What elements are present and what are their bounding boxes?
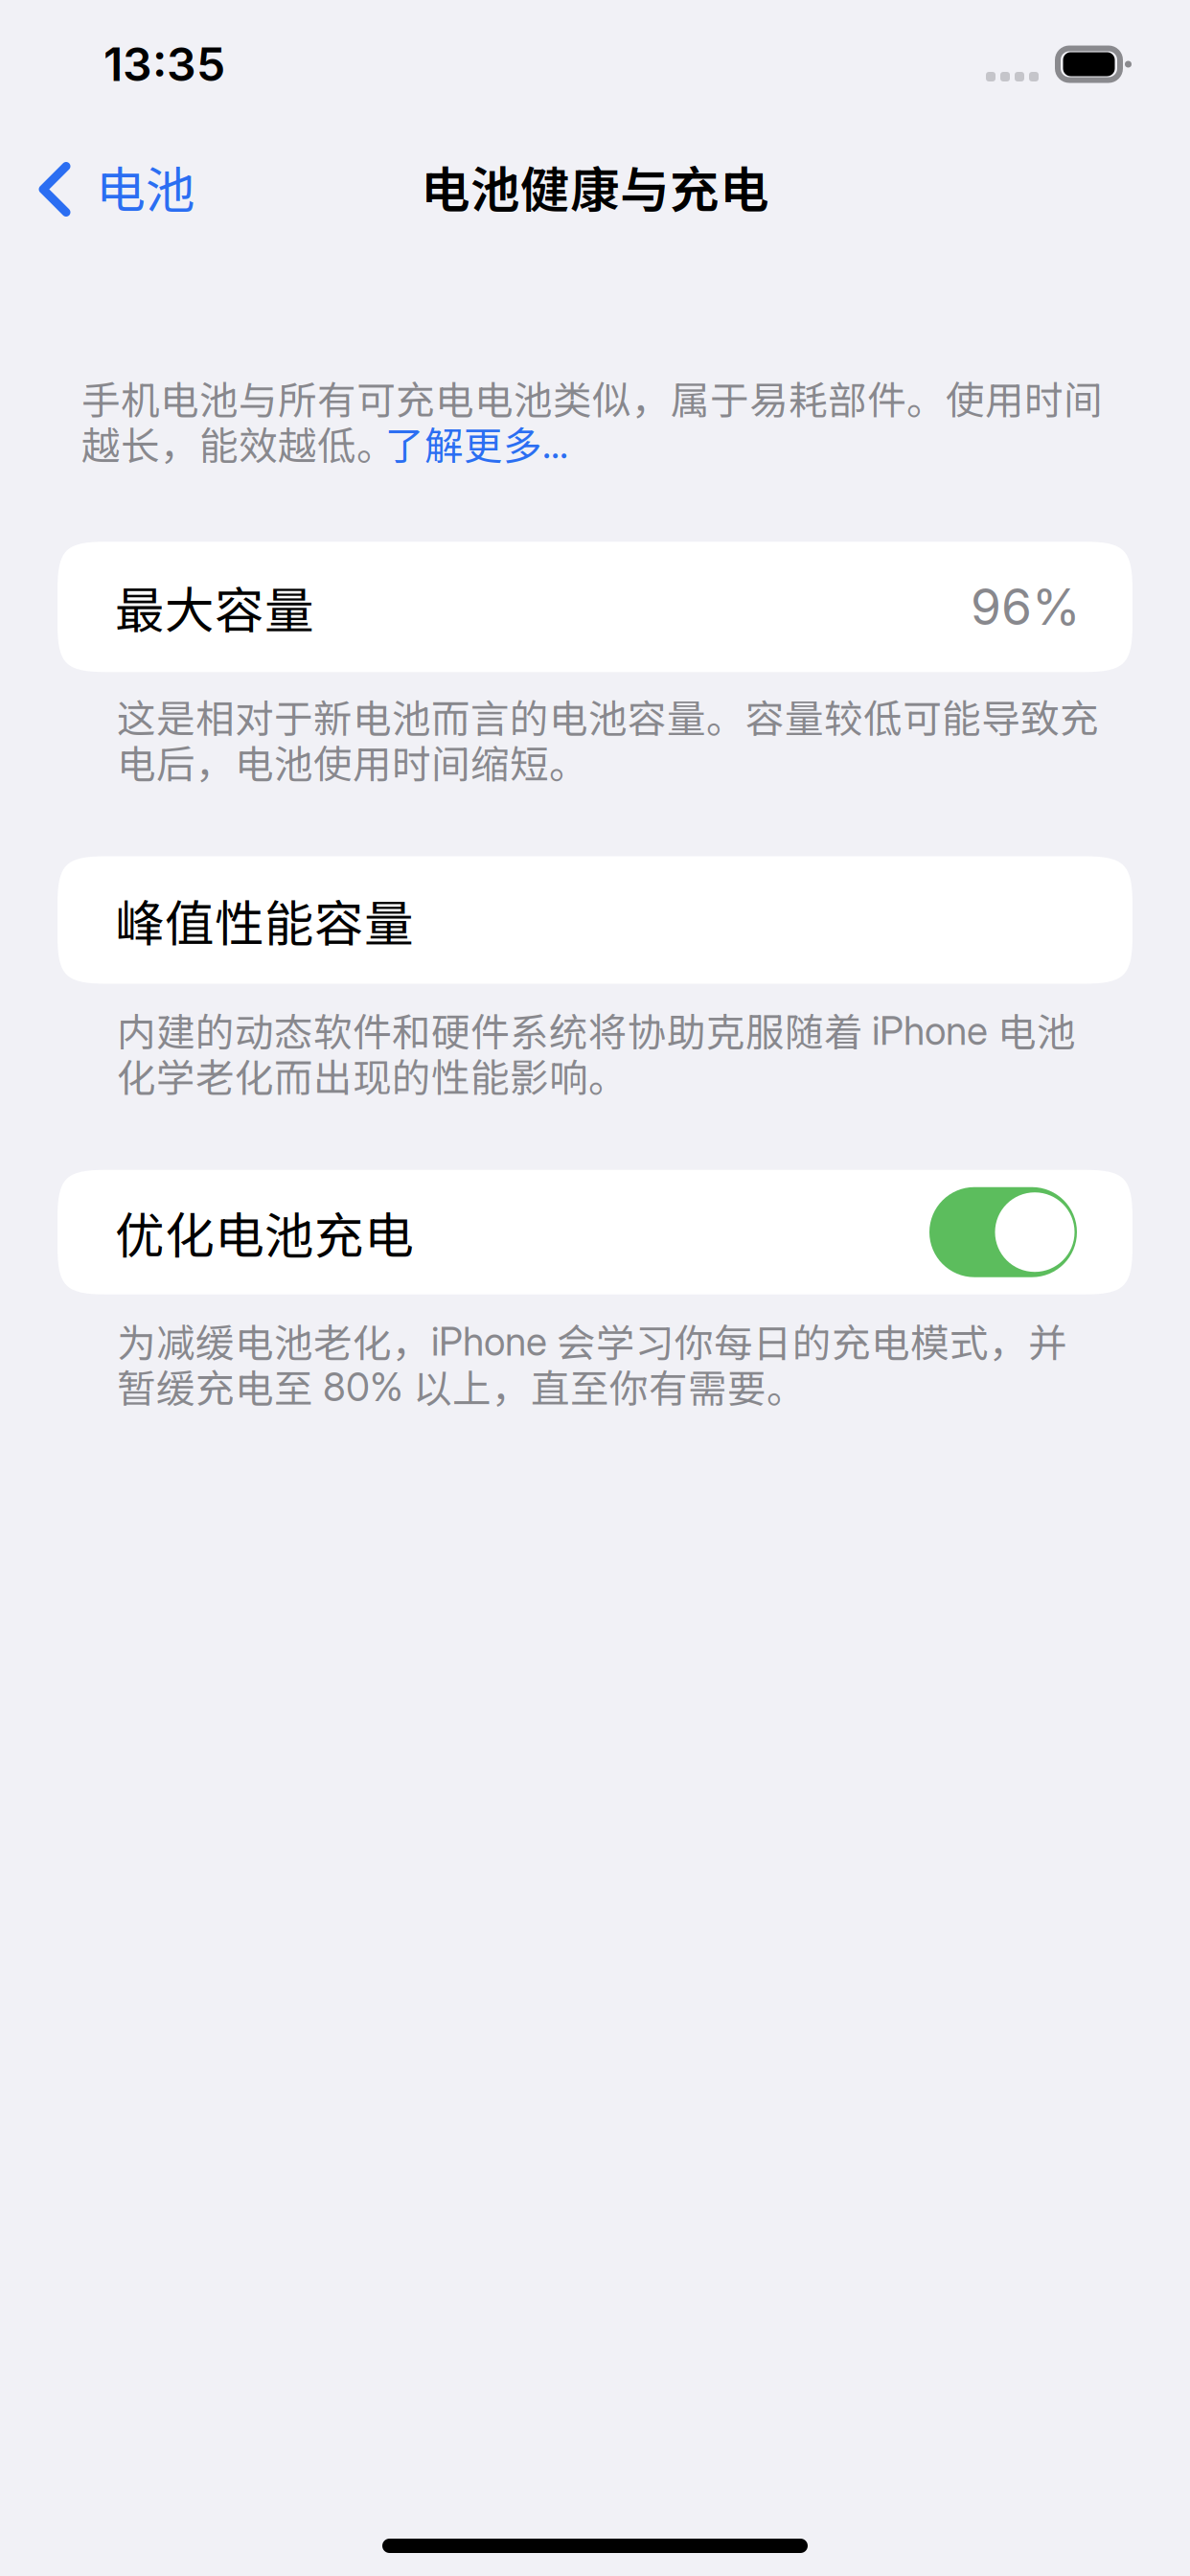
staticText: 峰值性能容量 <box>115 891 414 949</box>
staticText: 越长，能效越低。 <box>81 420 396 466</box>
staticText: 电池健康与充电 <box>421 157 769 215</box>
staticText: 手机电池与所有可充电电池类似，属于易耗部件。使用时间 <box>81 375 1103 420</box>
button[interactable]: 了解更多... <box>385 420 568 466</box>
staticText: 内建的动态软件和硬件系统将协助克服随着 iPhone 电池化学老化而出现的性能影… <box>117 1007 1076 1098</box>
staticText: 电池 <box>96 157 195 215</box>
staticText: 13:35 <box>103 42 225 87</box>
staticText: 96% <box>971 583 1081 631</box>
staticText: 最大容量 <box>115 578 314 636</box>
button[interactable]: 电池 <box>0 138 195 235</box>
staticText: 优化电池充电 <box>115 1203 414 1261</box>
staticText: 了解更多... <box>385 420 568 466</box>
staticText: 为减缓电池老化，iPhone 会学习你每日的充电模式，并暂缓充电至 80% 以上… <box>117 1317 1067 1409</box>
staticText: 这是相对于新电池而言的电池容量。容量较低可能导致充电后，电池使用时间缩短。 <box>117 693 1099 784</box>
